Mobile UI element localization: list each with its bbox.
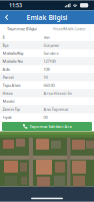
staticText: 10 <box>44 75 48 80</box>
button[interactable]: Taşınmaz Sahibini Ara <box>2 122 92 131</box>
button[interactable]: Hisse/Malik Listesi <box>44 24 94 33</box>
staticText: Ana Taşınmaz <box>44 107 69 112</box>
staticText: İl <box>3 35 5 40</box>
staticText: Sarıdere <box>44 51 59 56</box>
staticText: Hisse <box>3 91 13 96</box>
staticText: Gürpınar <box>44 43 60 48</box>
staticText: Mahalle No <box>3 59 23 64</box>
staticText: Parsel <box>3 75 14 80</box>
staticText: Ada <box>3 67 10 72</box>
staticText: 108 <box>44 67 50 72</box>
staticText: İlçe <box>3 43 9 48</box>
button[interactable]: Back <box>0 10 13 24</box>
staticText: Tapu Alanı <box>3 83 21 88</box>
staticText: Emlak Bilgisi <box>26 13 67 22</box>
staticText: Arsa Hissesi Sn <box>44 91 72 96</box>
staticText: Taşınmaz Bilgisi <box>7 26 37 31</box>
staticText: Zemin Tip <box>3 107 20 112</box>
staticText: Mevkii <box>3 99 15 104</box>
staticText: Hisse/Malik Listesi <box>52 26 85 31</box>
staticText: 660.00 <box>44 83 55 88</box>
staticText: Taşınmaz Sahibini Ara <box>29 124 71 129</box>
staticText: 00 <box>44 115 48 120</box>
button[interactable]: Taşınmaz Bilgisi <box>0 24 44 33</box>
staticText: Mahalle/Köy <box>3 51 24 56</box>
staticText: Van <box>44 35 50 40</box>
staticText: 127100 <box>44 59 56 64</box>
staticText: Fiyatı <box>3 115 12 120</box>
staticText: 11:53 <box>9 2 22 9</box>
